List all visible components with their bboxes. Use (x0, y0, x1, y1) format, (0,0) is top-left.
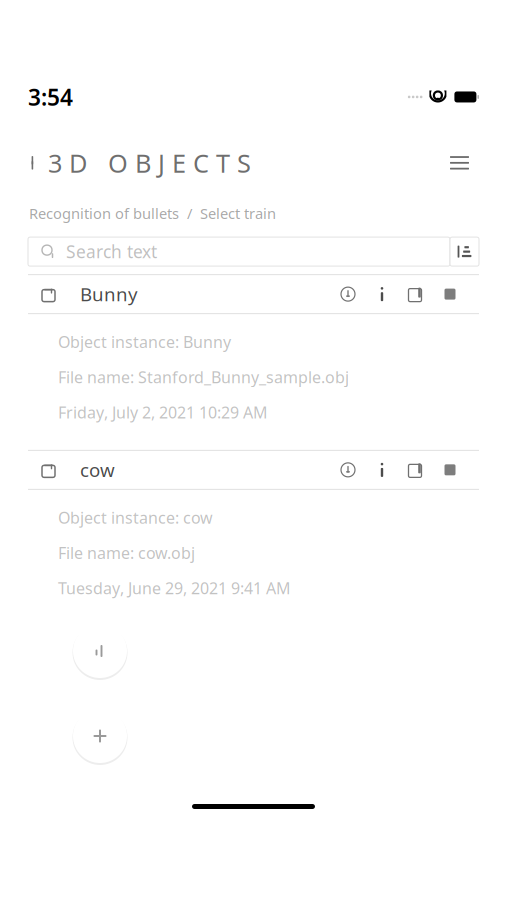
button[interactable]: Add object (71, 707, 129, 765)
button[interactable]: Stop (433, 277, 467, 311)
button[interactable]: Bunny (28, 275, 479, 313)
button[interactable]: cow (28, 451, 479, 489)
button[interactable]: Info (365, 277, 399, 311)
staticText: 3:54 (28, 82, 73, 112)
button[interactable]: Stop (433, 453, 467, 487)
staticText: Object instance: cow (58, 507, 213, 528)
staticText: Friday, July 2, 2021 10:29 AM (58, 402, 268, 423)
button[interactable]: Menu (440, 146, 479, 179)
button[interactable]: Sort (450, 237, 479, 266)
staticText: File name: Stanford_Bunny_sample.obj (58, 366, 349, 388)
staticText: Object instance: Bunny (58, 331, 231, 352)
button[interactable]: Info (365, 453, 399, 487)
button[interactable]: Edit (399, 453, 433, 487)
button[interactable]: Edit (399, 277, 433, 311)
staticText: Recognition of bullets / Select train (29, 204, 276, 223)
button[interactable]: Download (331, 277, 365, 311)
staticText: 3 D O B J E C T S (48, 146, 251, 180)
staticText: Search text (66, 240, 157, 263)
button[interactable]: Download (331, 453, 365, 487)
staticText: Tuesday, June 29, 2021 9:41 AM (58, 577, 291, 599)
staticText: File name: cow.obj (58, 542, 195, 563)
staticText: Bunny (80, 282, 138, 306)
button[interactable]: Confirm (71, 622, 129, 680)
staticText: cow (80, 457, 115, 482)
button[interactable]: Search text (28, 237, 450, 266)
button[interactable]: 3 D O B J E C T S (28, 138, 261, 188)
